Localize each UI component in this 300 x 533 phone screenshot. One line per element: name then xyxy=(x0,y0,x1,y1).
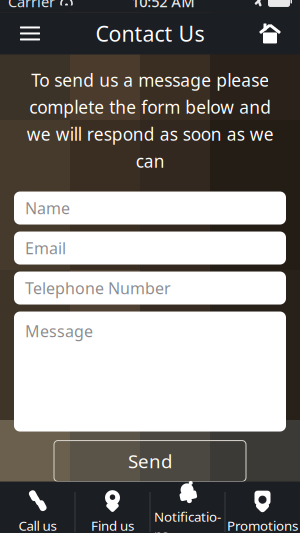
staticText: Carrier xyxy=(8,0,55,11)
staticText: Contact Us xyxy=(95,19,204,48)
staticText: Notifications xyxy=(154,508,221,533)
staticText: Promotions xyxy=(227,517,298,533)
staticText: Call us xyxy=(18,517,56,533)
staticText: Name xyxy=(25,197,70,219)
staticText: 10:52 AM xyxy=(131,0,194,11)
button[interactable]: Notifications xyxy=(150,481,224,533)
staticText: Email xyxy=(25,237,66,259)
button[interactable]: Menu xyxy=(8,12,52,54)
staticText: Send xyxy=(128,449,172,473)
button[interactable]: Find us xyxy=(75,481,149,533)
staticText: Find us xyxy=(91,517,134,533)
staticText: Message xyxy=(25,320,93,342)
button[interactable]: Call us xyxy=(0,481,74,533)
button[interactable]: Promotions xyxy=(225,481,299,533)
button[interactable]: Send xyxy=(54,440,246,481)
staticText: Telephone Number xyxy=(25,277,171,299)
staticText: To send us a message please complete the… xyxy=(26,68,273,173)
button[interactable]: Home xyxy=(248,12,292,54)
